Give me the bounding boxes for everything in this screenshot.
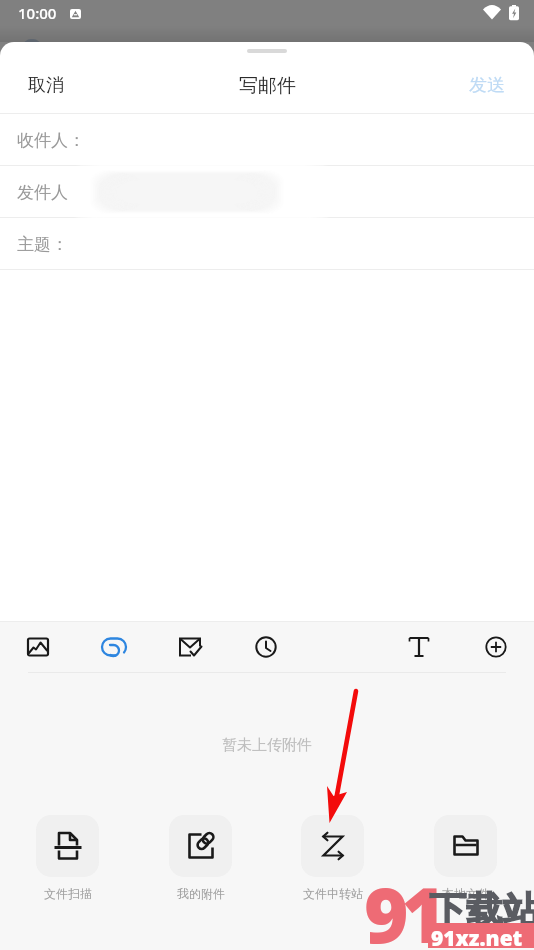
button[interactable]: 我的附件 [169,815,232,901]
button[interactable]: Mail [168,625,212,669]
staticText: 文件扫描 [44,886,92,901]
button[interactable]: 本地文件 [434,815,497,901]
button[interactable]: 主题： [0,218,534,269]
staticText: 我的附件 [177,886,225,901]
button[interactable]: More options [474,625,518,669]
button[interactable]: 收件人： [0,114,534,165]
button[interactable]: Insert image [16,625,60,669]
staticText: 写邮件 [239,74,296,98]
button[interactable]: 发件人 [0,166,534,217]
staticText: 文件中转站 [303,886,363,901]
staticText: 发送 [469,74,505,97]
staticText: 主题： [17,234,68,255]
button[interactable]: 取消 [0,62,82,109]
staticText: 取消 [28,74,64,97]
button[interactable]: Text format [397,625,441,669]
staticText: 91 [364,862,440,950]
button[interactable]: 发送 [451,62,534,109]
staticText: 本地文件 [442,886,490,901]
button[interactable]: 文件中转站 [301,815,364,901]
staticText: 下载站 [429,887,534,934]
button[interactable]: Schedule send [244,625,288,669]
staticText: 收件人： [17,130,85,151]
staticText: 91xz.net [431,924,523,950]
staticText: 暂未上传附件 [222,736,312,755]
staticText: 发件人 [17,182,68,203]
staticText: 10:00 [18,3,57,23]
button[interactable]: Attach file [92,625,136,669]
button[interactable]: 文件扫描 [36,815,99,901]
